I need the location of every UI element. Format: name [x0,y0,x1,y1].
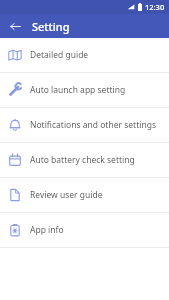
staticText: Auto launch app setting [30,84,126,96]
staticText: Setting [32,19,70,34]
button[interactable]: Notifications and other settings [0,108,169,142]
staticText: 12:30 [145,2,165,12]
staticText: Review user guide [30,189,103,201]
staticText: Auto battery check setting [30,154,135,166]
button[interactable]: Detailed guide [0,38,169,72]
button[interactable]: Auto battery check setting [0,143,169,177]
button[interactable]: Auto launch app setting [0,73,169,107]
staticText: App info [30,224,64,236]
button[interactable]: Back [5,16,25,36]
staticText: Detailed guide [30,49,89,61]
button[interactable]: Review user guide [0,178,169,212]
staticText: Notifications and other settings [30,119,156,131]
button[interactable]: App info [0,213,169,247]
